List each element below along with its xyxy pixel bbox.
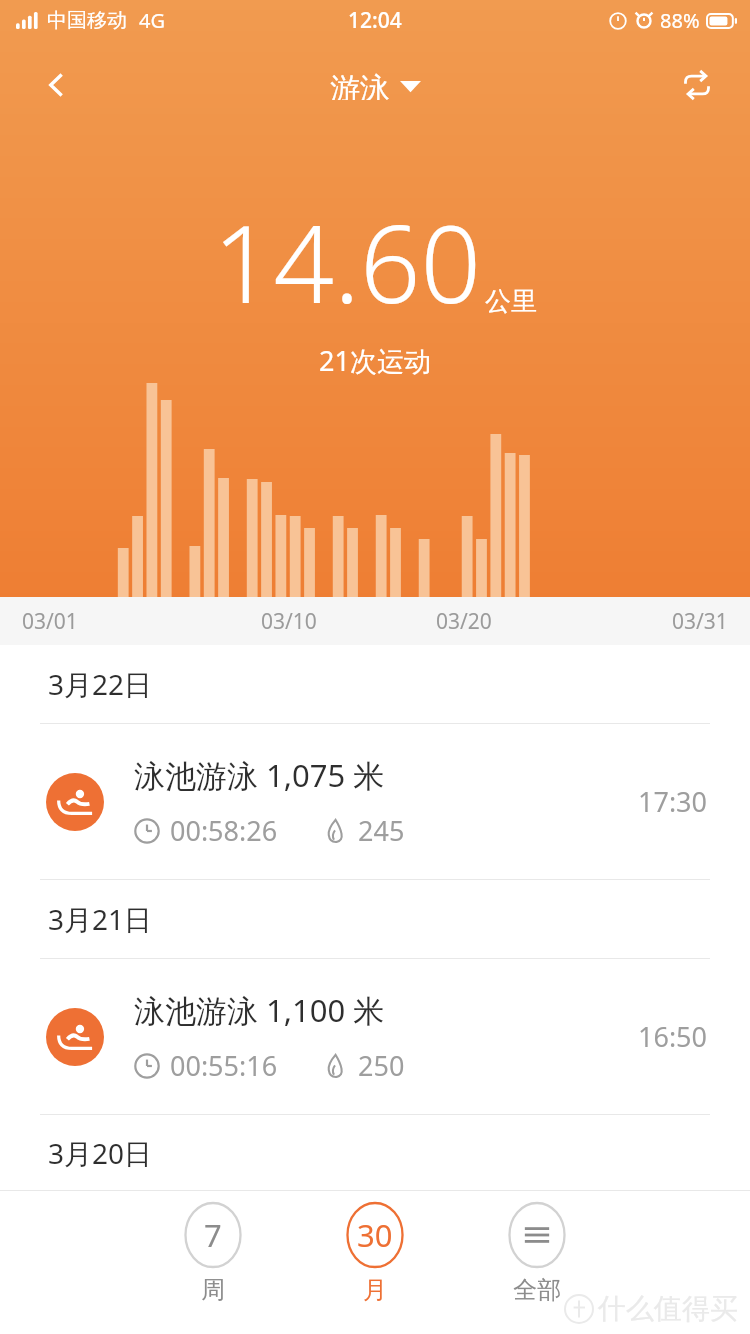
staticText: 周 [201,1275,225,1305]
button[interactable]: Back [30,62,84,108]
staticText: 全部 [513,1275,561,1305]
staticText: 17:30 [638,783,708,820]
staticText: 3月20日 [48,1134,153,1172]
staticText: 4G [139,7,165,34]
staticText: 03/10 [261,607,317,636]
staticText: 30 [357,1214,393,1256]
staticText: 03/01 [22,607,78,636]
staticText: 游泳 [330,70,390,100]
button[interactable]: 7 [173,1201,253,1307]
button[interactable]: 泳池游泳 1,100 米 [0,959,750,1114]
staticText: 什么值得买 [598,1291,738,1326]
button[interactable]: 游泳 [322,62,429,108]
staticText: 泳池游泳 1,100 米 [134,989,385,1031]
staticText: 21次运动 [319,342,431,379]
button[interactable]: 泳池游泳 1,075 米 [0,724,750,879]
staticText: 00:58:26 [170,812,278,849]
staticText: 月 [363,1275,387,1305]
staticText: 00:55:16 [170,1047,278,1084]
staticText: 12:04 [348,6,402,35]
staticText: 03/31 [672,607,728,636]
staticText: 泳池游泳 1,075 米 [134,754,385,796]
staticText: 公里 [485,285,537,318]
staticText: 88% [660,7,700,34]
staticText: 03/20 [436,607,492,636]
button[interactable]: 全部 [497,1201,577,1307]
staticText: 3月22日 [48,665,153,703]
staticText: 250 [358,1047,405,1084]
staticText: 16:50 [638,1018,708,1055]
staticText: 245 [358,812,405,849]
staticText: 3月21日 [48,900,153,938]
staticText: 14.60 [213,190,481,334]
button[interactable]: 30 [335,1201,415,1307]
staticText: 7 [204,1214,222,1256]
button[interactable]: Sync [670,62,724,108]
staticText: 中国移动 [47,8,127,33]
